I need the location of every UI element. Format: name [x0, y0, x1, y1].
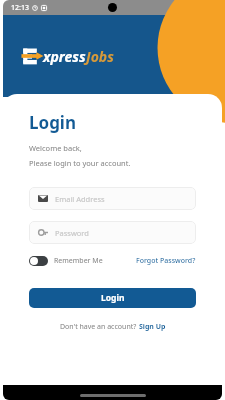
button[interactable]: Remember Me	[29, 256, 103, 266]
staticText: Sign Up	[139, 322, 166, 332]
staticText: Forgot Password?	[136, 256, 196, 266]
staticText: Email Address	[55, 194, 105, 204]
button[interactable]: Forgot Password?	[136, 256, 196, 266]
staticText: xpress	[43, 47, 86, 66]
staticText: Welcome back,	[29, 143, 82, 153]
staticText: Jobs	[86, 47, 114, 66]
staticText: 12:13	[11, 3, 29, 13]
button[interactable]: Password	[29, 221, 196, 244]
button[interactable]: Sign Up	[139, 322, 166, 332]
staticText: Login	[29, 111, 77, 134]
staticText: Please login to your account.	[29, 158, 131, 168]
staticText: Password	[55, 228, 89, 238]
button[interactable]: Email Address	[29, 187, 196, 210]
staticText: Remember Me	[54, 256, 103, 266]
button[interactable]: Login	[29, 288, 196, 308]
staticText: Don't have an account?	[60, 322, 139, 332]
staticText: Login	[101, 292, 125, 304]
